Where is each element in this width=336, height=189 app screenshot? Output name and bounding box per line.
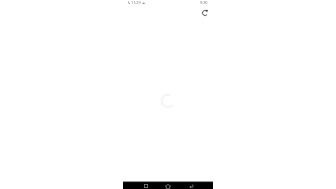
button[interactable]: Recent apps	[137, 181, 155, 189]
staticText: 11:29	[131, 0, 141, 5]
button[interactable]: Back	[182, 181, 200, 189]
button[interactable]: Refresh	[198, 7, 211, 19]
staticText: 9:30	[200, 0, 208, 5]
button[interactable]: Home	[159, 181, 177, 189]
